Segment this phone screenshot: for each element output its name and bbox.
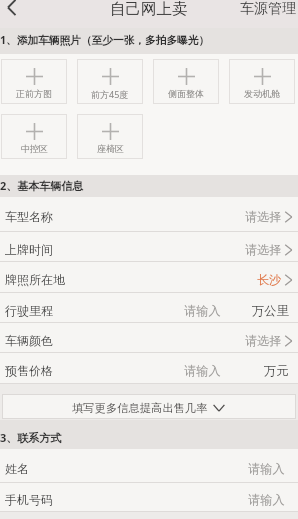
staticText: 请选择 [245,333,282,348]
button[interactable]: 中控区 [1,114,67,159]
staticText: 车辆颜色 [5,333,53,348]
staticText: 请输入 [184,303,221,318]
staticText: 长沙 [257,272,282,287]
staticText: 前方45度 [91,88,129,100]
button[interactable]: 正前方图 [1,59,67,104]
staticText: 自己网上卖 [110,0,188,19]
staticText: 请选择 [245,209,282,224]
button[interactable]: 手机号码 [0,483,298,512]
staticText: 1、添加车辆照片（至少一张，多拍多曝光） [0,33,210,48]
staticText: 万公里 [252,303,289,318]
staticText: 发动机舱 [244,88,280,99]
staticText: 姓名 [5,461,29,476]
staticText: 车源管理 [240,0,296,18]
button[interactable]: 牌照所在地 [0,262,298,293]
button[interactable]: 填写更多信息提高出售几率 [2,394,296,419]
button[interactable]: 车型名称 [0,197,298,232]
staticText: 正前方图 [16,88,52,99]
button[interactable]: 车辆颜色 [0,323,298,353]
button[interactable]: 侧面整体 [153,59,219,104]
button[interactable]: 前方45度 [77,59,143,104]
staticText: 座椅区 [97,143,124,154]
staticText: 上牌时间 [5,242,53,257]
staticText: 车型名称 [5,209,53,224]
button[interactable]: 姓名 [0,449,298,483]
staticText: 侧面整体 [168,88,204,99]
button[interactable]: 车源管理 [240,0,296,18]
staticText: 中控区 [21,143,48,154]
staticText: 请输入 [248,461,285,476]
staticText: 万元 [264,363,289,378]
staticText: 请输入 [248,492,285,507]
staticText: 牌照所在地 [5,272,65,287]
staticText: 请选择 [245,242,282,257]
staticText: 3、联系方式 [0,430,62,445]
button[interactable]: 上牌时间 [0,232,298,262]
staticText: 请输入 [184,363,221,378]
staticText: 2、基本车辆信息 [0,178,84,193]
button[interactable]: 预售价格 [0,353,298,384]
button[interactable]: 返回 [0,0,23,19]
button[interactable]: 发动机舱 [229,59,295,104]
button[interactable]: 行驶里程 [0,293,298,323]
button[interactable]: 座椅区 [77,114,143,159]
staticText: 预售价格 [5,363,53,378]
staticText: 填写更多信息提高出售几率 [72,401,208,415]
staticText: 手机号码 [5,492,53,507]
staticText: 行驶里程 [5,303,53,318]
